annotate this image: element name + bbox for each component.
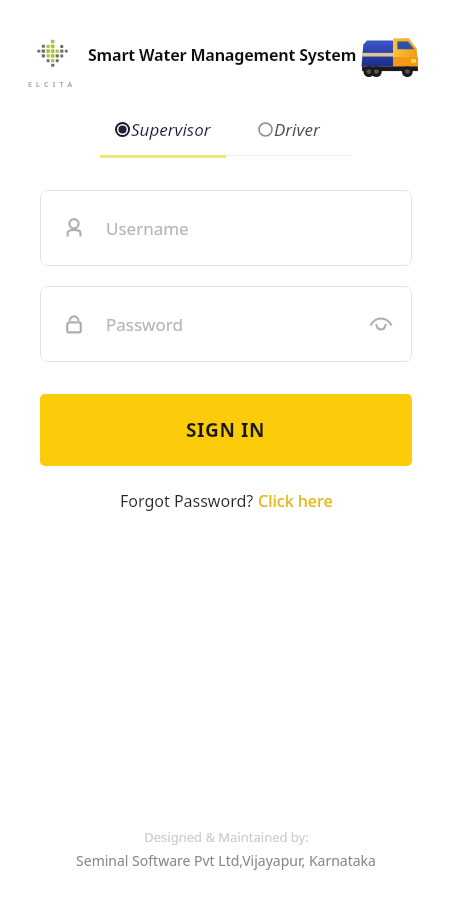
staticText: SIGN IN <box>186 417 266 443</box>
button[interactable]: Supervisor <box>100 118 226 158</box>
button[interactable]: Driver <box>226 118 352 156</box>
staticText: Supervisor <box>131 118 211 141</box>
button[interactable]: Click here <box>258 490 333 512</box>
staticText: Seminal Software Pvt Ltd,Vijayapur, Karn… <box>76 851 376 870</box>
button[interactable]: Username <box>40 190 412 266</box>
staticText: Forgot Password? <box>120 490 258 512</box>
button[interactable]: Password <box>40 286 412 362</box>
button[interactable]: SIGN IN <box>40 394 412 466</box>
other: Water tanker truck <box>359 30 421 82</box>
staticText: Smart Water Management System <box>88 44 357 66</box>
staticText: Driver <box>274 118 320 141</box>
staticText: Click here <box>258 490 333 512</box>
staticText: Designed & Maintained by: <box>144 828 309 846</box>
staticText: E L C I T A <box>28 80 74 90</box>
staticText: Username <box>106 217 392 240</box>
button[interactable]: Toggle password visibility <box>358 301 404 347</box>
staticText: Password <box>106 313 358 336</box>
